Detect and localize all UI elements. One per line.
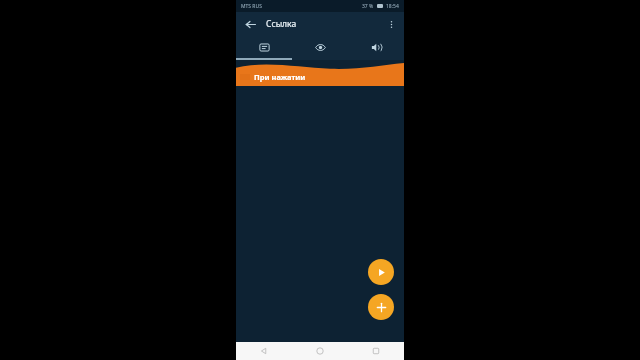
button[interactable]: More options: [382, 15, 400, 33]
staticText: MTS RUS: [241, 3, 262, 10]
button[interactable]: При нажатии: [236, 60, 404, 86]
staticText: 37 %: [362, 3, 374, 10]
button[interactable]: Add: [368, 294, 394, 320]
staticText: 18:54: [386, 3, 399, 10]
button[interactable]: Back: [236, 342, 292, 360]
staticText: При нажатии: [254, 72, 306, 82]
button[interactable]: Preview: [292, 36, 348, 58]
button[interactable]: Back: [241, 15, 259, 33]
button[interactable]: Play: [368, 259, 394, 285]
staticText: Ссылка: [266, 18, 297, 30]
button[interactable]: Recents: [348, 342, 404, 360]
button[interactable]: Layout: [236, 36, 292, 58]
button[interactable]: Sound: [348, 36, 404, 58]
button[interactable]: Home: [292, 342, 348, 360]
